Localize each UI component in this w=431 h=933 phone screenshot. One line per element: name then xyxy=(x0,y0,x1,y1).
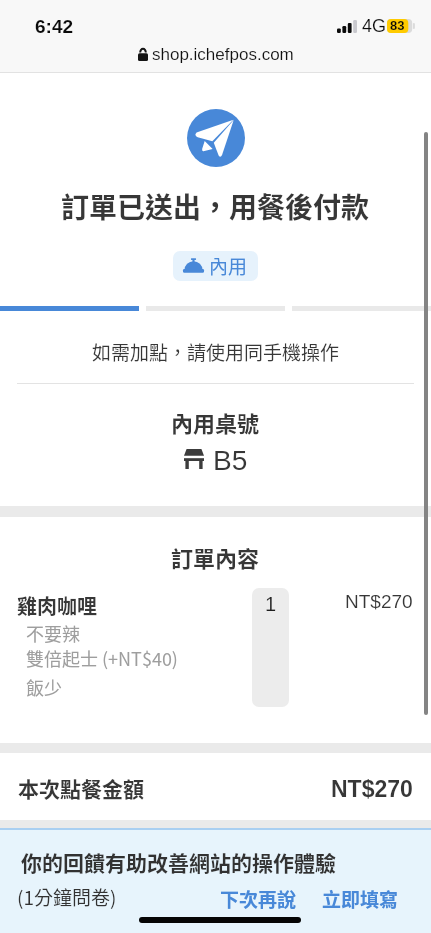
staticText: 如需加點，請使用同手機操作 xyxy=(92,338,340,366)
staticText: 6:42 xyxy=(35,16,74,37)
button[interactable]: shop.ichefpos.com xyxy=(0,42,431,66)
staticText: B5 xyxy=(213,445,248,476)
staticText: NT$270 xyxy=(345,591,413,612)
staticText: 內用桌號 xyxy=(171,406,260,438)
staticText: 訂單內容 xyxy=(171,541,260,573)
staticText: 雞肉咖哩 xyxy=(17,591,97,620)
button[interactable]: 下次再說 xyxy=(214,879,303,919)
staticText: 內用 xyxy=(209,252,248,280)
staticText: 訂單已送出，用餐後付款 xyxy=(61,186,370,227)
staticText: (1分鐘問卷) xyxy=(17,883,117,911)
staticText: NT$270 xyxy=(331,776,413,802)
staticText: 你的回饋有助改善網站的操作體驗 xyxy=(21,847,336,877)
button[interactable]: 內用 xyxy=(173,251,258,281)
staticText: 不要辣 xyxy=(26,620,80,646)
staticText: 本次點餐金額 xyxy=(18,773,144,803)
staticText: shop.ichefpos.com xyxy=(152,45,294,64)
staticText: 雙倍起士 (+NT$40) xyxy=(26,645,178,671)
staticText: 83 xyxy=(390,18,405,33)
staticText: 4G xyxy=(362,16,387,36)
staticText: 立即填寫 xyxy=(322,885,399,913)
button[interactable]: 立即填寫 xyxy=(316,879,405,919)
staticText: 1 xyxy=(265,593,277,615)
staticText: 飯少 xyxy=(26,674,62,700)
staticText: 下次再說 xyxy=(220,885,297,913)
